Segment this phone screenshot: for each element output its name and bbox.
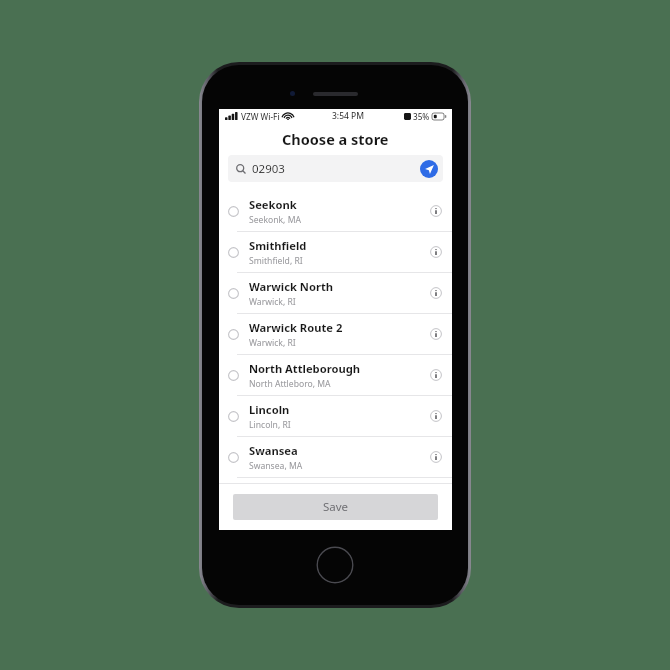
button[interactable]: Warwick North	[219, 273, 452, 313]
button[interactable]: North Attleborough	[219, 355, 452, 395]
staticText: 35%	[413, 111, 430, 122]
button[interactable]: Store info	[424, 281, 448, 305]
staticText: VZW Wi-Fi	[241, 111, 280, 122]
staticText: Lincoln, RI	[249, 419, 291, 431]
staticText: Seekonk	[249, 197, 297, 212]
staticText: 02903	[252, 161, 285, 177]
staticText: Warwick, RI	[249, 296, 296, 308]
staticText: Smithfield	[249, 238, 307, 253]
button[interactable]: Store info	[424, 199, 448, 223]
button[interactable]: Lincoln	[219, 396, 452, 436]
button[interactable]: Store info	[424, 240, 448, 264]
staticText: Warwick Route 2	[249, 320, 343, 335]
button[interactable]: Swansea	[219, 437, 452, 477]
button[interactable]: Store info	[424, 445, 448, 469]
button[interactable]: Warwick Route 2	[219, 314, 452, 354]
staticText: Choose a store	[282, 129, 389, 149]
button[interactable]: Store info	[424, 322, 448, 346]
staticText: Warwick North	[249, 279, 334, 294]
button[interactable]: Seekonk	[219, 191, 452, 231]
button[interactable]: Store info	[424, 363, 448, 387]
staticText: Swansea, MA	[249, 460, 303, 472]
staticText: Seekonk, MA	[249, 214, 301, 226]
staticText: Lincoln	[249, 402, 290, 417]
button[interactable]: Store info	[424, 404, 448, 428]
button[interactable]: Save	[233, 494, 438, 520]
staticText: Warwick, RI	[249, 337, 296, 349]
staticText: North Attleborough	[249, 361, 361, 376]
button[interactable]: Use current location	[420, 160, 438, 178]
button[interactable]: Home	[316, 546, 354, 584]
button[interactable]: 02903	[228, 155, 443, 182]
staticText: North Attleboro, MA	[249, 378, 331, 390]
staticText: Smithfield, RI	[249, 255, 303, 267]
staticText: Swansea	[249, 443, 298, 458]
staticText: Save	[323, 499, 349, 515]
button[interactable]: Smithfield	[219, 232, 452, 272]
staticText: 3:54 PM	[332, 110, 365, 122]
